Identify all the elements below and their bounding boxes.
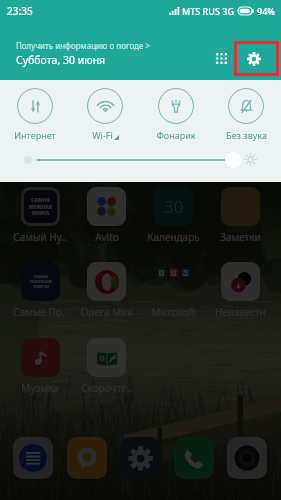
staticText: 30 (164, 195, 184, 218)
staticText: Самый Ну.. (13, 230, 67, 244)
staticText: Самые По.. (13, 305, 67, 319)
staticText: Календарь (147, 230, 200, 244)
button[interactable]: САМАЯ НУЖНАЯ КНИГА (21, 187, 60, 226)
staticText: 94% (257, 5, 275, 17)
button[interactable]: X (154, 262, 193, 301)
button[interactable]: САМЫЕ ПОЛЕЗНЫЕ СОВЕТЫ (21, 262, 60, 301)
staticText: Получить информацию о погоде > (16, 40, 150, 51)
button[interactable]: Settings (234, 41, 279, 76)
staticText: X (160, 270, 164, 276)
staticText: Фонарик (156, 129, 196, 141)
button[interactable] (87, 262, 126, 301)
staticText: Музыка (21, 381, 59, 395)
staticText: САМЫЕ ПОЛЕЗНЫЕ СОВЕТЫ (30, 274, 52, 289)
button[interactable] (221, 262, 260, 301)
staticText: Opera Mini (80, 305, 133, 319)
button[interactable]: Без звука (211, 88, 281, 141)
button[interactable]: Brightness (225, 152, 241, 168)
button[interactable]: Wi-Fi (70, 88, 140, 141)
staticText: Microsoft (151, 305, 196, 319)
button[interactable] (87, 187, 126, 226)
staticText: Без звука (226, 129, 267, 141)
button[interactable]: Assistant (67, 437, 107, 479)
staticText: Суббота, 30 июня (16, 53, 106, 67)
staticText: Интернет (14, 129, 56, 141)
button[interactable]: Camera (227, 437, 267, 479)
button[interactable]: Интернет (0, 88, 70, 141)
staticText: САМАЯ НУЖНАЯ КНИГА (29, 197, 52, 216)
button[interactable] (221, 187, 260, 226)
button[interactable] (21, 338, 60, 377)
button[interactable]: Phone (174, 437, 214, 479)
staticText: Wi-Fi (92, 129, 113, 141)
button[interactable]: Documents (13, 437, 53, 479)
staticText: Заметки (220, 230, 261, 244)
button[interactable]: Settings (120, 437, 160, 479)
button[interactable]: 30 (154, 187, 193, 226)
button[interactable]: Фонарик (141, 88, 211, 141)
staticText: Неизвестн (215, 305, 266, 319)
staticText: P (172, 270, 176, 276)
button[interactable]: Получить информацию о погоде > (16, 40, 150, 67)
button[interactable] (87, 338, 126, 377)
staticText: MTS RUS 3G (182, 5, 234, 17)
staticText: 23:35 (7, 4, 33, 18)
button[interactable]: All apps (209, 45, 234, 71)
staticText: Скорочте.. (81, 381, 132, 395)
staticText: Avito (95, 230, 119, 244)
staticText: W (183, 270, 188, 276)
